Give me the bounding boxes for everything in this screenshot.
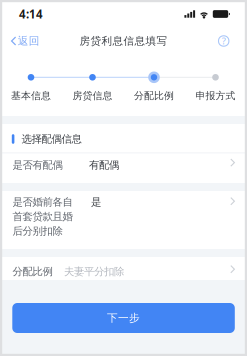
staticText: 房贷利息信息填写 [79, 34, 167, 48]
staticText: 基本信息 [11, 90, 51, 102]
button[interactable]: 返回 [0, 28, 48, 54]
staticText: ? [222, 35, 226, 47]
staticText: 是否有配偶 [13, 158, 63, 171]
staticText: 夫妻平分扣除 [64, 265, 124, 278]
button[interactable]: 是否婚前各自首套贷款且婚后分别扣除 [0, 191, 247, 249]
staticText: 4:14 [19, 6, 43, 22]
staticText: 有配偶 [89, 158, 119, 171]
button[interactable]: 帮助 [210, 28, 247, 54]
button[interactable]: 分配比例 [0, 257, 247, 280]
staticText: 下一步 [107, 311, 140, 325]
staticText: 申报方式 [195, 90, 235, 102]
staticText: 选择配偶信息 [21, 132, 81, 145]
staticText: 是 [91, 195, 101, 209]
button[interactable]: 下一步 [12, 303, 235, 333]
staticText: 是否婚前各自首套贷款且婚后分别扣除 [13, 195, 73, 238]
staticText: 返回 [18, 34, 40, 48]
staticText: 分配比例 [13, 265, 53, 278]
button[interactable]: 是否有配偶 [0, 153, 247, 183]
staticText: 房贷信息 [72, 90, 112, 102]
staticText: 分配比例 [134, 90, 174, 102]
